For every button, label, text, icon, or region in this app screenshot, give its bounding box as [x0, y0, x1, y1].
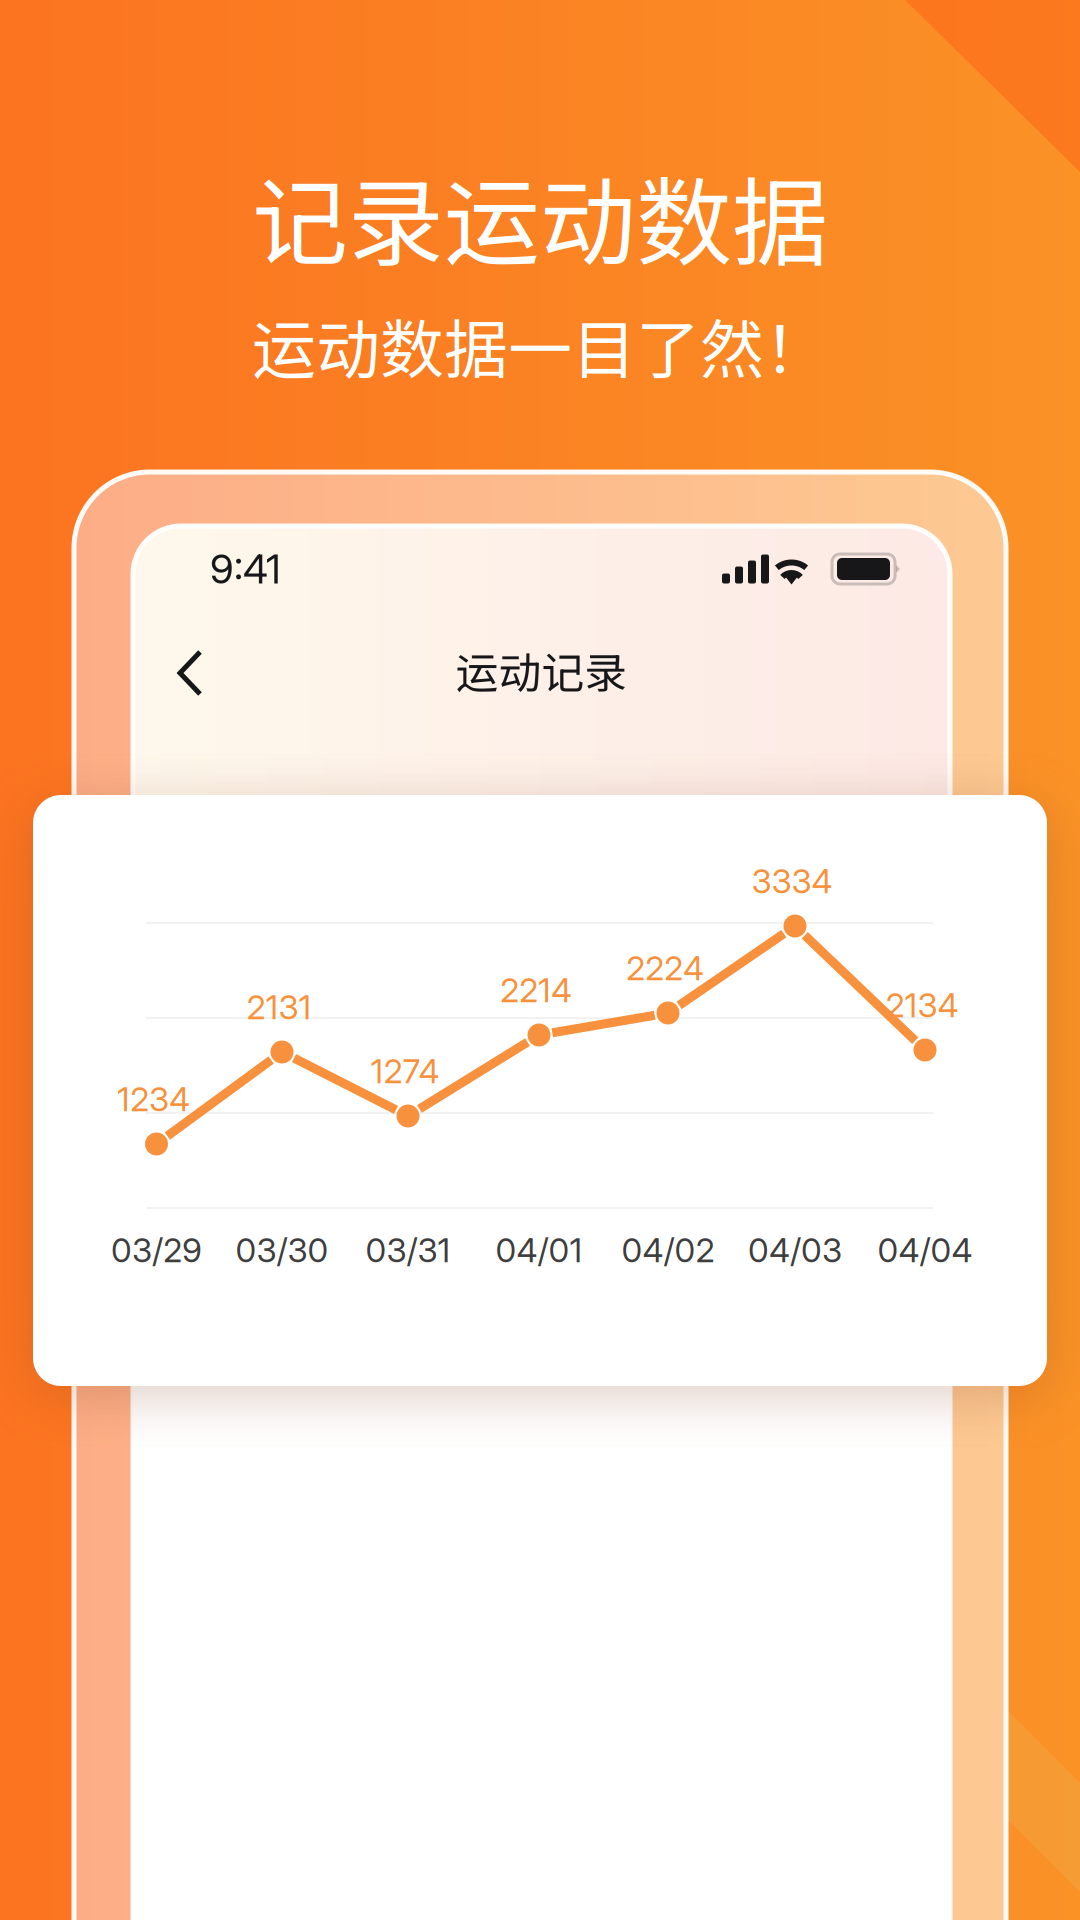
button[interactable]: Back	[138, 622, 234, 722]
staticText: 2134	[885, 985, 958, 1025]
staticText: 03/29	[111, 1230, 202, 1270]
staticText: 记录运动数据	[252, 146, 828, 285]
staticText: 2224	[626, 948, 704, 988]
staticText: 04/02	[621, 1230, 714, 1270]
staticText: 03/31	[365, 1230, 450, 1270]
staticText: 2214	[500, 970, 572, 1010]
staticText: 3334	[751, 861, 832, 901]
staticText: 9:41	[210, 545, 281, 593]
staticText: 04/04	[877, 1230, 972, 1270]
staticText: 运动记录	[455, 639, 627, 701]
staticText: 2131	[246, 987, 311, 1027]
staticText: 04/03	[748, 1230, 842, 1270]
staticText: 1234	[117, 1079, 190, 1119]
staticText: 04/01	[495, 1230, 582, 1270]
staticText: 运动数据一目了然！	[252, 299, 828, 391]
staticText: 03/30	[235, 1230, 328, 1270]
staticText: 1274	[370, 1051, 439, 1091]
